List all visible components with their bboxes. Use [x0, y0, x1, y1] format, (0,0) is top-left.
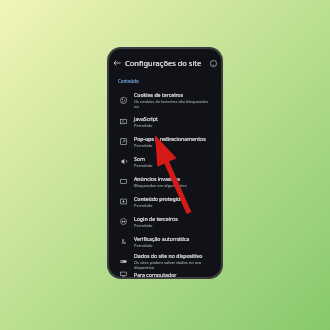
staticText: Permitido — [134, 223, 153, 228]
staticText: Conteúdo protegido — [134, 195, 184, 202]
button[interactable]: Cookies de terceiros — [109, 89, 221, 111]
staticText: Permitido — [134, 143, 153, 148]
button[interactable]: Dados do site no dispositivo — [109, 251, 221, 271]
button[interactable]: Voltar — [109, 54, 125, 72]
staticText: Permitido — [134, 123, 153, 128]
staticText: Bloqueados em alguns sites — [134, 183, 187, 188]
button[interactable]: Anúncios invasivos — [109, 171, 221, 191]
staticText: Permitido — [134, 203, 153, 208]
staticText: JavaScript — [134, 115, 158, 122]
staticText: Som — [134, 155, 145, 162]
staticText: Os cookies de terceiros são bloqueados n… — [134, 99, 214, 109]
staticText: Permitido — [134, 163, 153, 168]
button[interactable]: Conteúdo protegido — [109, 191, 221, 211]
button[interactable]: Login de terceiros — [109, 211, 221, 231]
button[interactable]: Verificação automática — [109, 231, 221, 251]
staticText: Os sites podem salvar dados no seu dispo… — [134, 260, 214, 270]
button[interactable]: Som — [109, 151, 221, 171]
staticText: Dados do site no dispositivo — [134, 252, 203, 259]
staticText: Anúncios invasivos — [134, 175, 180, 182]
staticText: Verificação automática — [134, 235, 190, 242]
staticText: Login de terceiros — [134, 215, 178, 222]
button[interactable]: Ajuda — [205, 54, 221, 72]
staticText: Pop-ups e redirecionamentos — [134, 135, 206, 142]
staticText: Permitido — [134, 243, 153, 248]
button[interactable]: Pop-ups e redirecionamentos — [109, 131, 221, 151]
staticText: Para computador — [134, 271, 177, 277]
button[interactable]: JavaScript — [109, 111, 221, 131]
staticText: Configurações do site — [125, 58, 202, 68]
button[interactable]: Para computador — [109, 271, 221, 277]
staticText: Cookies de terceiros — [134, 91, 184, 98]
staticText: Conteúdo — [118, 78, 139, 84]
